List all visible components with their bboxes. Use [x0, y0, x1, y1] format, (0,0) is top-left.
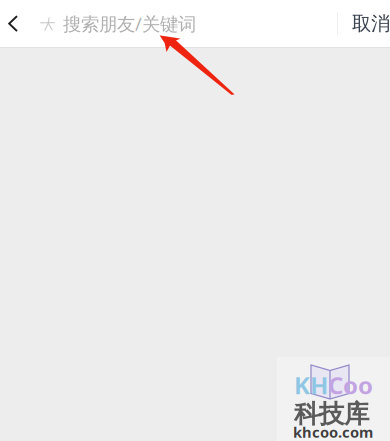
- staticText: khcoo.com: [293, 422, 373, 441]
- button[interactable]: Back: [0, 0, 26, 47]
- button[interactable]: 取消: [338, 0, 390, 47]
- staticText: KH: [294, 369, 328, 401]
- staticText: 搜索朋友/关键词: [63, 11, 196, 36]
- staticText: Coo: [328, 369, 373, 401]
- staticText: 取消: [352, 11, 390, 36]
- staticText: 科技库: [294, 398, 369, 430]
